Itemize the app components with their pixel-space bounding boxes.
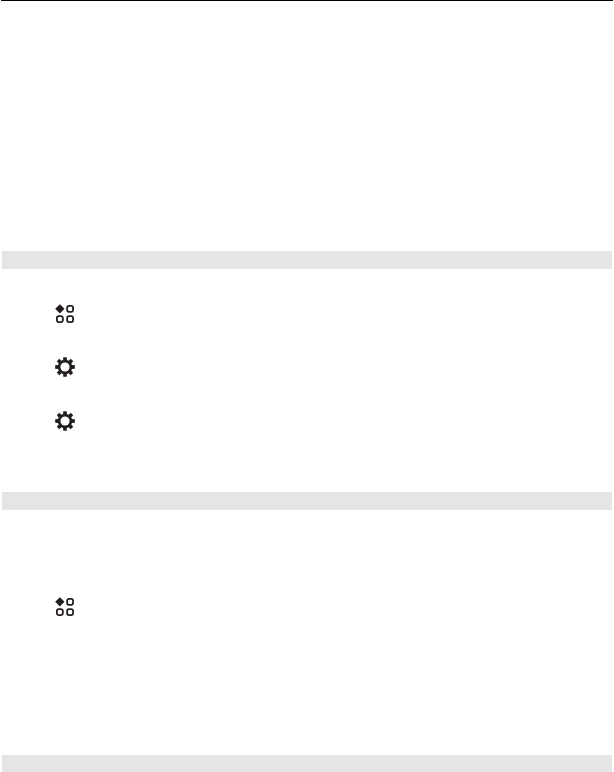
button[interactable]: Widgets [0, 305, 614, 323]
button[interactable]: Settings [0, 357, 614, 377]
button[interactable]: Advanced settings [0, 411, 614, 431]
button[interactable]: Apps [0, 598, 614, 616]
